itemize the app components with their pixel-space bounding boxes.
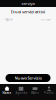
staticText: serviyo [21,1,34,6]
button[interactable]: Wallet [28,87,42,92]
button[interactable]: Home [0,0,56,7]
button[interactable]: Profilo [42,87,56,92]
staticText: I tuoi servizi attivi [11,9,45,14]
staticText: 30 min [41,18,51,21]
button[interactable]: Agenda [14,87,28,92]
staticText: Wallet [31,91,39,95]
button[interactable]: Nuovo Servizio [5,74,50,82]
button[interactable]: Home [0,87,14,92]
staticText: Taglia [5,18,12,21]
staticText: Home [2,91,11,95]
staticText: Profilo [44,91,54,95]
staticText: Agenda [15,91,26,95]
staticText: Nuovo Servizio [14,75,41,81]
